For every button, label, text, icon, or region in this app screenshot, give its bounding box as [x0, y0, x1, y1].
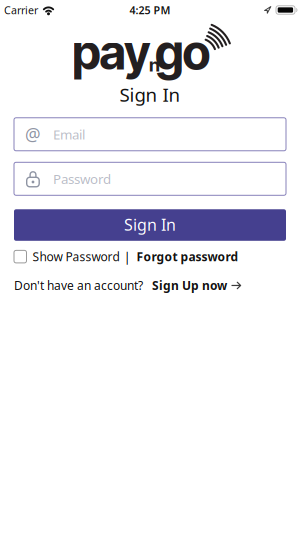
- staticText: n: [149, 54, 160, 76]
- button[interactable]: Show Password: [14, 249, 119, 265]
- button[interactable]: Sign Up now: [152, 277, 241, 293]
- staticText: Forgot password: [136, 249, 238, 265]
- button[interactable]: Password: [14, 162, 286, 195]
- staticText: Password: [53, 170, 111, 188]
- staticText: @: [25, 123, 41, 146]
- staticText: pay: [72, 23, 151, 81]
- staticText: Carrier: [4, 3, 38, 17]
- staticText: Show Password: [32, 249, 119, 265]
- button[interactable]: @: [14, 118, 286, 151]
- staticText: Sign Up now: [152, 277, 227, 293]
- staticText: Don't have an account?: [14, 277, 143, 293]
- staticText: Email: [53, 125, 85, 143]
- staticText: Sign In: [124, 214, 176, 235]
- button[interactable]: Forgot password: [136, 249, 238, 265]
- button[interactable]: Sign In: [14, 209, 286, 241]
- staticText: |: [123, 248, 130, 265]
- staticText: go: [155, 23, 210, 81]
- staticText: 4:25 PM: [129, 3, 170, 17]
- staticText: Sign In: [119, 82, 180, 107]
